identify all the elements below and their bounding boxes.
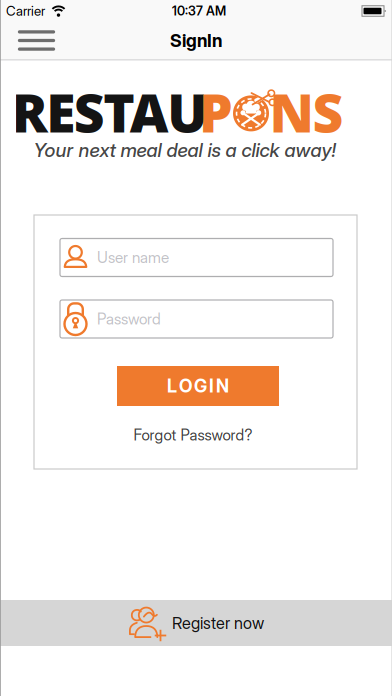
staticText: NS (269, 76, 343, 147)
staticText: RESTAU (12, 76, 207, 147)
staticText: LOGIN (167, 375, 229, 397)
staticText: Forgot Password? (133, 426, 252, 444)
staticText: Password (97, 310, 161, 328)
button[interactable]: Menu (0, 23, 53, 58)
staticText: Register now (172, 613, 264, 633)
staticText: User name (97, 248, 169, 267)
button[interactable]: Forgot Password? (133, 426, 252, 444)
staticText: Your next meal deal is a click away! (33, 138, 335, 162)
staticText: SignIn (170, 30, 222, 51)
button[interactable]: Register now (0, 600, 392, 646)
staticText: Carrier (6, 3, 45, 19)
staticText: 10:37 AM (172, 3, 226, 19)
staticText: P (199, 76, 233, 147)
button[interactable]: LOGIN (117, 366, 279, 406)
